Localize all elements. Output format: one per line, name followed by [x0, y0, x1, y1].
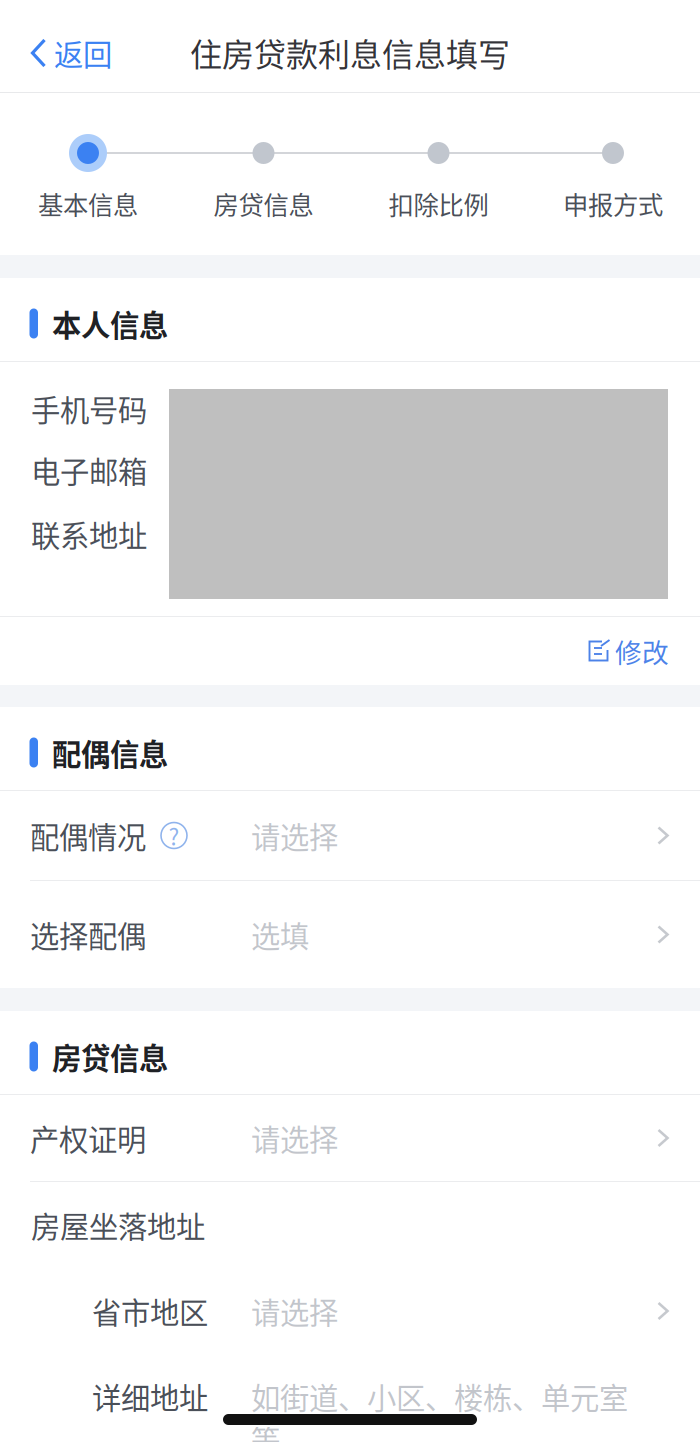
staticText: 基本信息: [38, 185, 138, 222]
staticText: 住房贷款利息信息填写: [190, 29, 510, 76]
button[interactable]: 产权证明: [0, 1095, 700, 1181]
button[interactable]: 选择配偶: [0, 881, 700, 988]
staticText: ?: [168, 819, 179, 852]
staticText: 房贷信息: [213, 185, 313, 222]
button[interactable]: 省市地区: [0, 1268, 700, 1354]
staticText: 房屋坐落地址: [31, 1204, 205, 1246]
staticText: 本人信息: [52, 302, 168, 345]
staticText: 详细地址: [92, 1375, 208, 1417]
staticText: 配偶信息: [52, 731, 168, 774]
staticText: 配偶情况: [30, 814, 146, 857]
staticText: 选择配偶: [30, 913, 146, 956]
staticText: 房贷信息: [52, 1035, 168, 1078]
button[interactable]: 详细地址: [0, 1354, 700, 1442]
staticText: 请选择: [251, 1290, 338, 1332]
staticText: 省市地区: [92, 1290, 208, 1332]
staticText: 请选择: [251, 1117, 338, 1159]
staticText: 扣除比例: [388, 185, 488, 222]
staticText: 修改: [615, 632, 669, 670]
staticText: 产权证明: [30, 1117, 146, 1159]
button[interactable]: 修改: [587, 616, 700, 686]
staticText: 手机号码: [31, 387, 147, 430]
button[interactable]: 配偶情况: [0, 791, 700, 880]
staticText: 如街道、小区、楼栋、单元室等: [251, 1375, 628, 1442]
staticText: 电子邮箱: [31, 449, 147, 491]
staticText: 申报方式: [563, 185, 663, 222]
button[interactable]: 返回: [0, 5, 112, 87]
staticText: 返回: [54, 32, 112, 74]
staticText: 请选择: [251, 814, 338, 857]
staticText: 联系地址: [31, 513, 147, 555]
staticText: 选填: [251, 913, 309, 956]
